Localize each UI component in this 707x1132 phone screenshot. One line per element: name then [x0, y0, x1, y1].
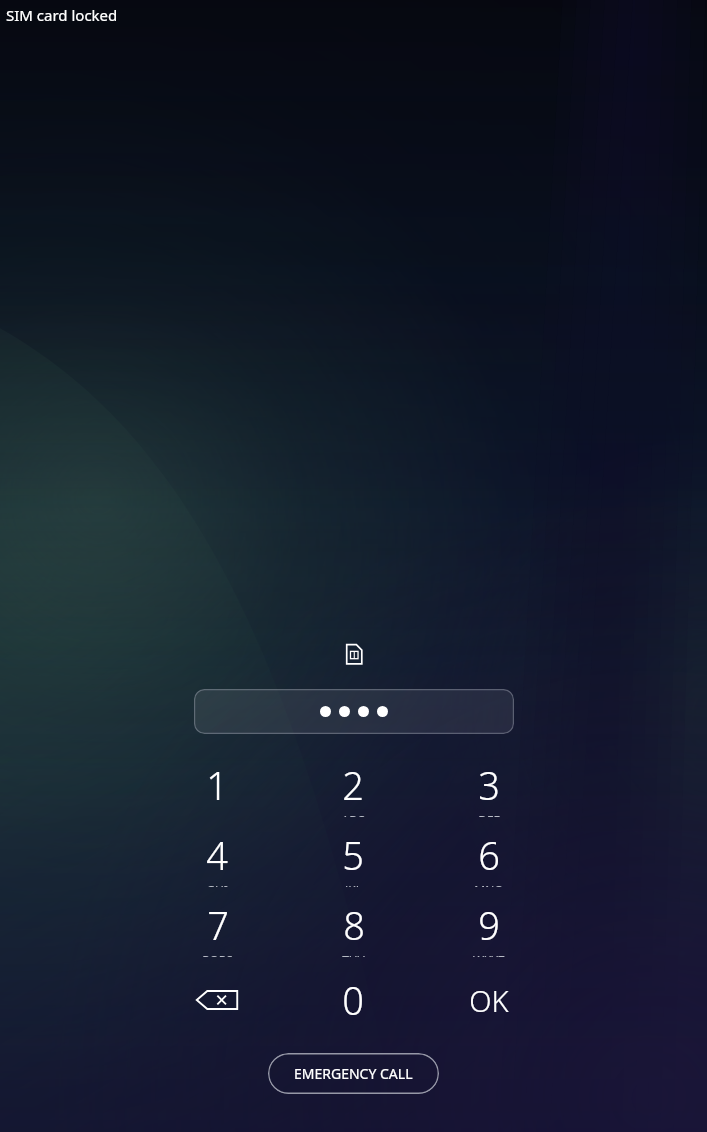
staticText: 6	[478, 829, 500, 881]
staticText: 3	[478, 759, 500, 811]
staticText: OK	[469, 981, 509, 1020]
staticText: DEF	[478, 812, 500, 817]
staticText: EMERGENCY CALL	[294, 1064, 413, 1083]
button[interactable]: 3	[421, 759, 557, 817]
button[interactable]: 9	[421, 899, 557, 957]
staticText: GHI	[206, 882, 228, 887]
staticText: 4	[206, 829, 228, 881]
button[interactable]: 2	[285, 759, 421, 817]
staticText: 1	[206, 759, 228, 811]
staticText: JKL	[345, 882, 362, 887]
button[interactable]: OK	[421, 969, 557, 1031]
button[interactable]: EMERGENCY CALL	[268, 1053, 439, 1094]
other: SIM card	[341, 641, 367, 667]
staticText: 5	[342, 829, 364, 881]
button[interactable]: 8	[285, 899, 421, 957]
staticText: 7	[207, 899, 229, 951]
staticText: MNO	[474, 882, 504, 887]
staticText: TUV	[342, 952, 365, 957]
staticText: PQRS	[202, 952, 233, 957]
staticText: ABC	[341, 812, 365, 817]
staticText: 2	[342, 759, 364, 811]
button[interactable]: 5	[285, 829, 421, 887]
staticText: 9	[478, 899, 500, 951]
button[interactable]: 6	[421, 829, 557, 887]
button[interactable]	[194, 689, 514, 734]
staticText: 0	[342, 974, 364, 1026]
staticText: WXYZ	[473, 952, 505, 957]
button[interactable]: 4	[149, 829, 285, 887]
button[interactable]: 1	[149, 759, 285, 817]
button[interactable]: 0	[285, 969, 421, 1031]
staticText: 8	[343, 899, 365, 951]
button[interactable]: 7	[149, 899, 285, 957]
staticText: SIM card locked	[6, 5, 118, 25]
button[interactable]: Delete	[149, 969, 285, 1031]
